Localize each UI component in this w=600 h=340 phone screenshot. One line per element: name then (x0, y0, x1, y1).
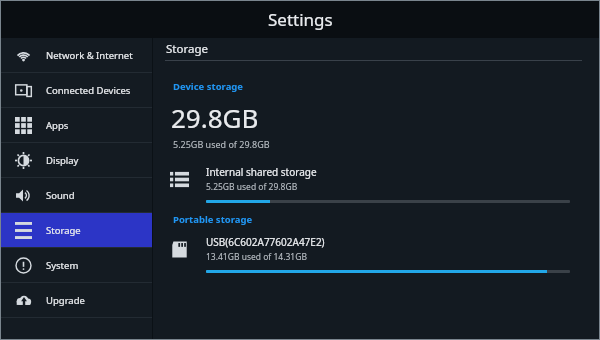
staticText: Storage (46, 224, 81, 237)
staticText: System (46, 259, 79, 272)
staticText: Internal shared storage (206, 165, 317, 179)
other: Upgrade (15, 292, 32, 309)
button[interactable]: Connected Devices (0, 73, 152, 107)
button[interactable]: Sound (0, 178, 152, 212)
button[interactable]: Upgrade (0, 283, 152, 317)
other: System (15, 257, 32, 274)
other: Internal shared storage (170, 170, 189, 189)
button[interactable]: Display (0, 143, 152, 177)
staticText: Storage (166, 41, 208, 57)
staticText: Connected Devices (46, 84, 131, 97)
button[interactable]: Storage (0, 213, 152, 247)
staticText: 29.8GB (171, 100, 259, 135)
staticText: Network & Internet (46, 49, 133, 62)
other: Network and Internet (15, 47, 32, 64)
staticText: Apps (46, 119, 69, 132)
button[interactable]: Network and Internet (0, 38, 152, 72)
button[interactable]: System (0, 248, 152, 282)
staticText: 13.41GB used of 14.31GB (206, 251, 307, 263)
other: USB storage (170, 240, 189, 259)
other: Connected Devices (15, 82, 32, 99)
staticText: Upgrade (46, 294, 85, 307)
staticText: Display (46, 154, 79, 167)
button[interactable]: Internal shared storage (153, 162, 600, 203)
staticText: 5.25GB used of 29.8GB (173, 138, 270, 150)
staticText: Portable storage (173, 213, 253, 226)
staticText: 5.25GB used of 29.8GB (206, 181, 298, 193)
other: Sound (15, 187, 32, 204)
button[interactable]: Apps (0, 108, 152, 142)
staticText: Sound (46, 189, 75, 202)
other: Apps (15, 117, 32, 134)
staticText: USB(6C602A77602A47E2) (206, 235, 325, 249)
staticText: Settings (268, 8, 333, 31)
button[interactable]: USB storage (153, 232, 600, 273)
other: Storage (15, 222, 32, 239)
other: Display (15, 152, 32, 169)
staticText: Device storage (173, 80, 243, 93)
